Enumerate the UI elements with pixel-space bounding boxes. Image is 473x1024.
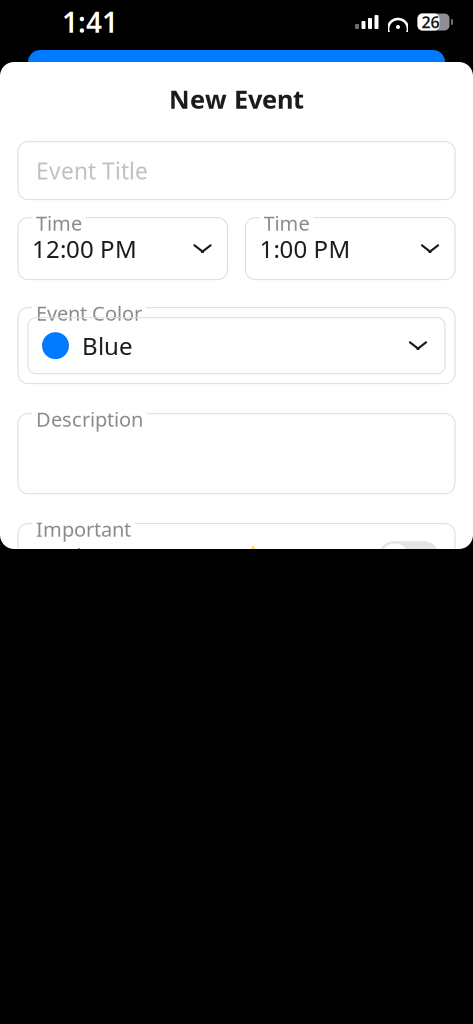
button[interactable]: 1:00 PM	[245, 218, 455, 280]
staticText: Event Color	[36, 300, 142, 326]
staticText: Description	[36, 406, 143, 432]
staticText: 1:00 PM	[259, 233, 350, 265]
staticText: New Event	[169, 82, 304, 116]
staticText: Important	[36, 516, 131, 542]
staticText: 12:00 PM	[32, 233, 137, 265]
staticText: Blue	[82, 330, 133, 362]
staticText: Event Title	[36, 156, 148, 186]
staticText: Mark as Important ⭐️	[33, 543, 267, 573]
button[interactable]: Mark as Important ⭐️	[18, 524, 455, 592]
button[interactable]: Blue	[18, 318, 455, 374]
button[interactable]: 12:00 PM	[18, 218, 227, 280]
staticText: Time	[263, 210, 309, 236]
staticText: 26	[421, 11, 439, 33]
staticText: Time	[36, 210, 82, 236]
staticText: 1:41	[62, 3, 118, 41]
